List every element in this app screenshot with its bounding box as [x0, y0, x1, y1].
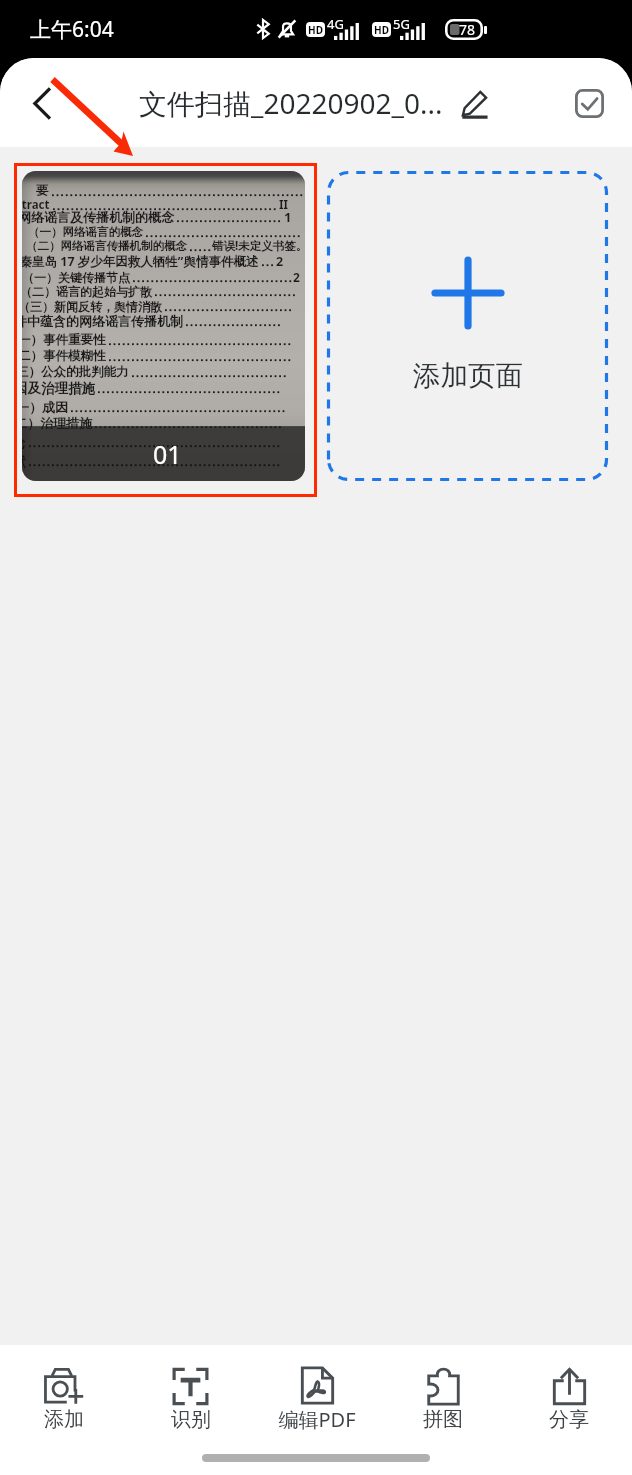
button[interactable]: 分享 [506, 1359, 632, 1436]
staticText: 添加页面 [413, 359, 523, 394]
staticText: 1 [284, 208, 292, 226]
staticText: 2 [293, 269, 300, 285]
staticText: 二）事件模糊性 [22, 348, 106, 364]
button[interactable]: Back [18, 79, 66, 127]
staticText: 拼图 [423, 1407, 463, 1432]
staticText: （一）网络谣言的概念 [28, 225, 143, 239]
staticText: “秦皇岛 17 岁少年因救人牺牲”舆情事件概述 [22, 253, 259, 270]
staticText: 分享 [549, 1407, 589, 1432]
staticText: 因及治理措施 [22, 380, 95, 397]
staticText: 三）公众的批判能力 [22, 364, 129, 380]
staticText: 识别 [171, 1407, 211, 1432]
button[interactable]: 编辑PDF [254, 1358, 380, 1437]
staticText: （二）网络谣言传播机制的概念 [26, 239, 187, 253]
staticText: 78 [459, 20, 476, 39]
staticText: HD [308, 23, 323, 37]
staticText: 论 [22, 434, 26, 451]
staticText: 献 [22, 453, 26, 470]
staticText: 上午6:04 [30, 15, 114, 44]
staticText: II [279, 197, 288, 213]
staticText: 4G [327, 15, 344, 33]
button[interactable]: 添加 [0, 1359, 127, 1436]
staticText: 文件扫描_20220902_0... [139, 84, 443, 122]
staticText: stract [22, 197, 50, 213]
button[interactable]: 添加页面 [327, 171, 608, 481]
staticText: 错误!未定义书签。 [212, 238, 305, 254]
staticText: 件中蕴含的网络谣言传播机制 [22, 313, 183, 329]
staticText: 一）事件重要性 [22, 332, 106, 348]
staticText: （一）关键传播节点 [22, 270, 130, 285]
staticText: 5G [393, 15, 410, 33]
staticText: 二）治理措施 [22, 415, 92, 431]
staticText: 添加 [44, 1407, 84, 1432]
button[interactable]: Scanned page 01 [22, 171, 305, 481]
staticText: 网络谣言及传播机制的概念 [22, 209, 174, 225]
staticText: 2 [276, 253, 284, 270]
button[interactable]: Select all [566, 80, 612, 126]
button[interactable]: 识别 [127, 1359, 254, 1436]
staticText: 01 [153, 437, 182, 471]
staticText: （二）谣言的起始与扩散 [22, 284, 152, 299]
staticText: 编辑PDF [278, 1406, 356, 1433]
staticText: 一）成因 [22, 399, 68, 415]
staticText: 1 [304, 224, 305, 240]
button[interactable]: Rename [457, 86, 491, 120]
button[interactable]: 拼图 [380, 1359, 506, 1436]
staticText: HD [374, 23, 389, 37]
staticText: （三）新闻反转，舆情消散 [22, 299, 162, 314]
staticText: 要 [36, 183, 49, 199]
